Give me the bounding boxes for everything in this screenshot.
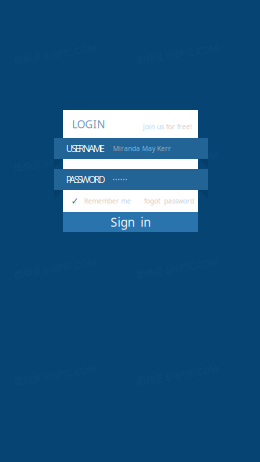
staticText: LOGIN [72, 117, 105, 131]
staticText: 图精灵 616PIC.COM [14, 155, 96, 167]
staticText: ✓ [71, 196, 79, 206]
button[interactable]: fogot password [144, 197, 194, 205]
staticText: 图精灵 616PIC.COM [136, 155, 218, 167]
button[interactable]: Sign in [63, 212, 198, 232]
staticText: Sign in [110, 214, 150, 230]
staticText: PASSWORD [66, 173, 105, 186]
staticText: join us for free! [143, 122, 192, 131]
staticText: Remember me [84, 197, 131, 205]
button[interactable]: ✓ [71, 196, 131, 206]
staticText: fogot password [144, 197, 194, 205]
staticText: Miranda May Kerr [113, 144, 171, 153]
staticText: USERNAME [66, 142, 104, 155]
